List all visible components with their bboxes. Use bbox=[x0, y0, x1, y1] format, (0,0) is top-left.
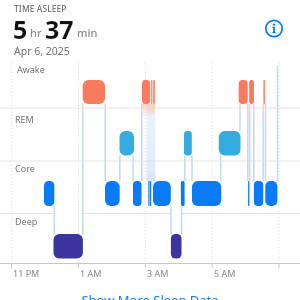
staticText: hr bbox=[30, 25, 42, 40]
staticText: 3 AM bbox=[147, 267, 169, 279]
staticText: Awake bbox=[17, 63, 45, 75]
staticText: min bbox=[77, 25, 98, 40]
staticText: TIME ASLEEP bbox=[14, 3, 67, 15]
staticText: 5 bbox=[13, 12, 28, 46]
staticText: 11 PM bbox=[13, 267, 40, 279]
staticText: 37 bbox=[45, 12, 74, 46]
staticText: Core bbox=[15, 162, 35, 174]
staticText: Deep bbox=[15, 215, 38, 227]
button[interactable]: Show More Sleep Data bbox=[0, 291, 300, 300]
staticText: REM bbox=[15, 113, 34, 125]
staticText: 5 AM bbox=[214, 267, 236, 279]
staticText: 1 AM bbox=[80, 267, 102, 279]
staticText: Show More Sleep Data bbox=[0, 291, 300, 300]
staticText: Apr 6, 2025 bbox=[14, 44, 70, 58]
button[interactable] bbox=[262, 16, 286, 40]
